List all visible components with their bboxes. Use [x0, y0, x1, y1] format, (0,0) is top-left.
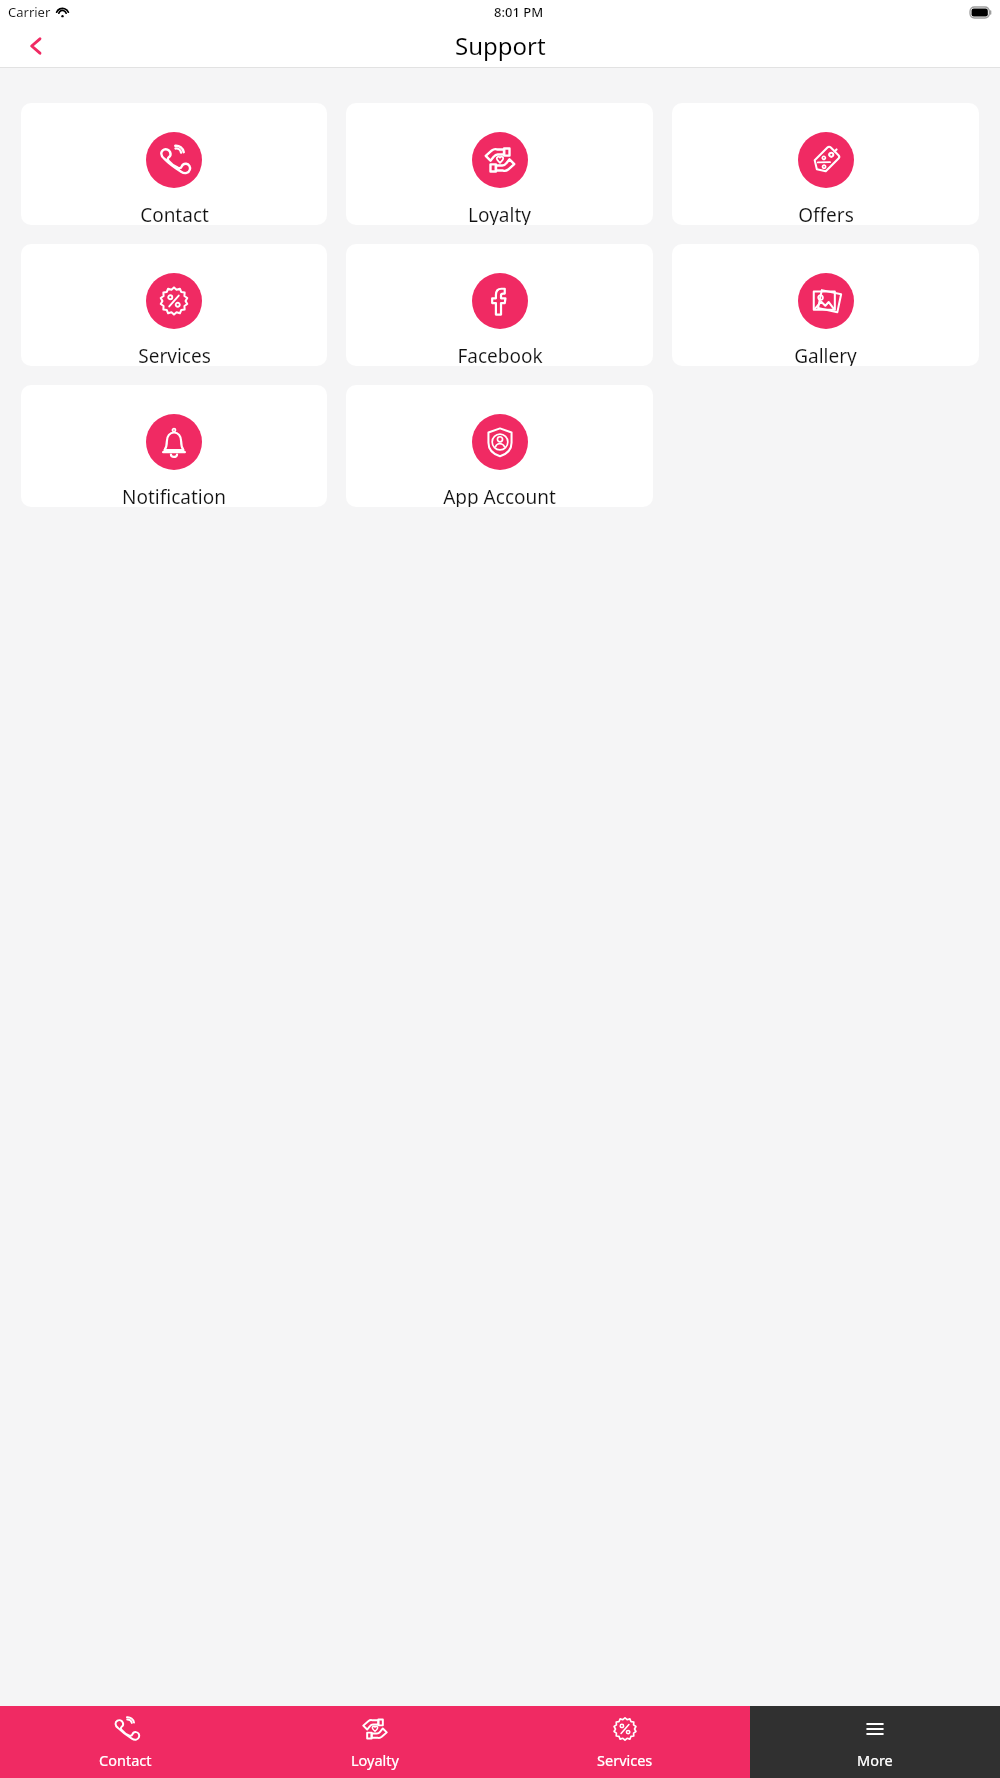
staticText: Carrier [8, 3, 51, 21]
button[interactable]: Loyalty [250, 1706, 500, 1778]
button[interactable]: Facebook [346, 244, 653, 366]
button[interactable]: Contact [0, 1706, 250, 1778]
button[interactable]: Back [14, 24, 58, 67]
staticText: Contact [99, 1750, 152, 1770]
button[interactable]: More [750, 1706, 1000, 1778]
button[interactable]: Contact [21, 103, 327, 225]
staticText: Offers [798, 202, 854, 225]
staticText: Facebook [457, 343, 543, 366]
button[interactable]: App Account [346, 385, 653, 507]
staticText: Services [138, 343, 211, 366]
button[interactable]: Loyalty [346, 103, 653, 225]
staticText: Support [455, 29, 546, 62]
staticText: Loyalty [468, 202, 531, 225]
staticText: Contact [140, 202, 209, 225]
button[interactable]: Services [21, 244, 327, 366]
button[interactable]: Services [500, 1706, 750, 1778]
button[interactable]: Offers [672, 103, 979, 225]
staticText: More [857, 1750, 893, 1770]
button[interactable]: Notification [21, 385, 327, 507]
staticText: App Account [443, 484, 556, 507]
staticText: Services [597, 1750, 653, 1770]
staticText: 8:01 PM [494, 3, 544, 21]
staticText: Loyalty [351, 1750, 399, 1770]
button[interactable]: Gallery [672, 244, 979, 366]
staticText: Notification [122, 484, 226, 507]
staticText: Gallery [794, 343, 857, 366]
